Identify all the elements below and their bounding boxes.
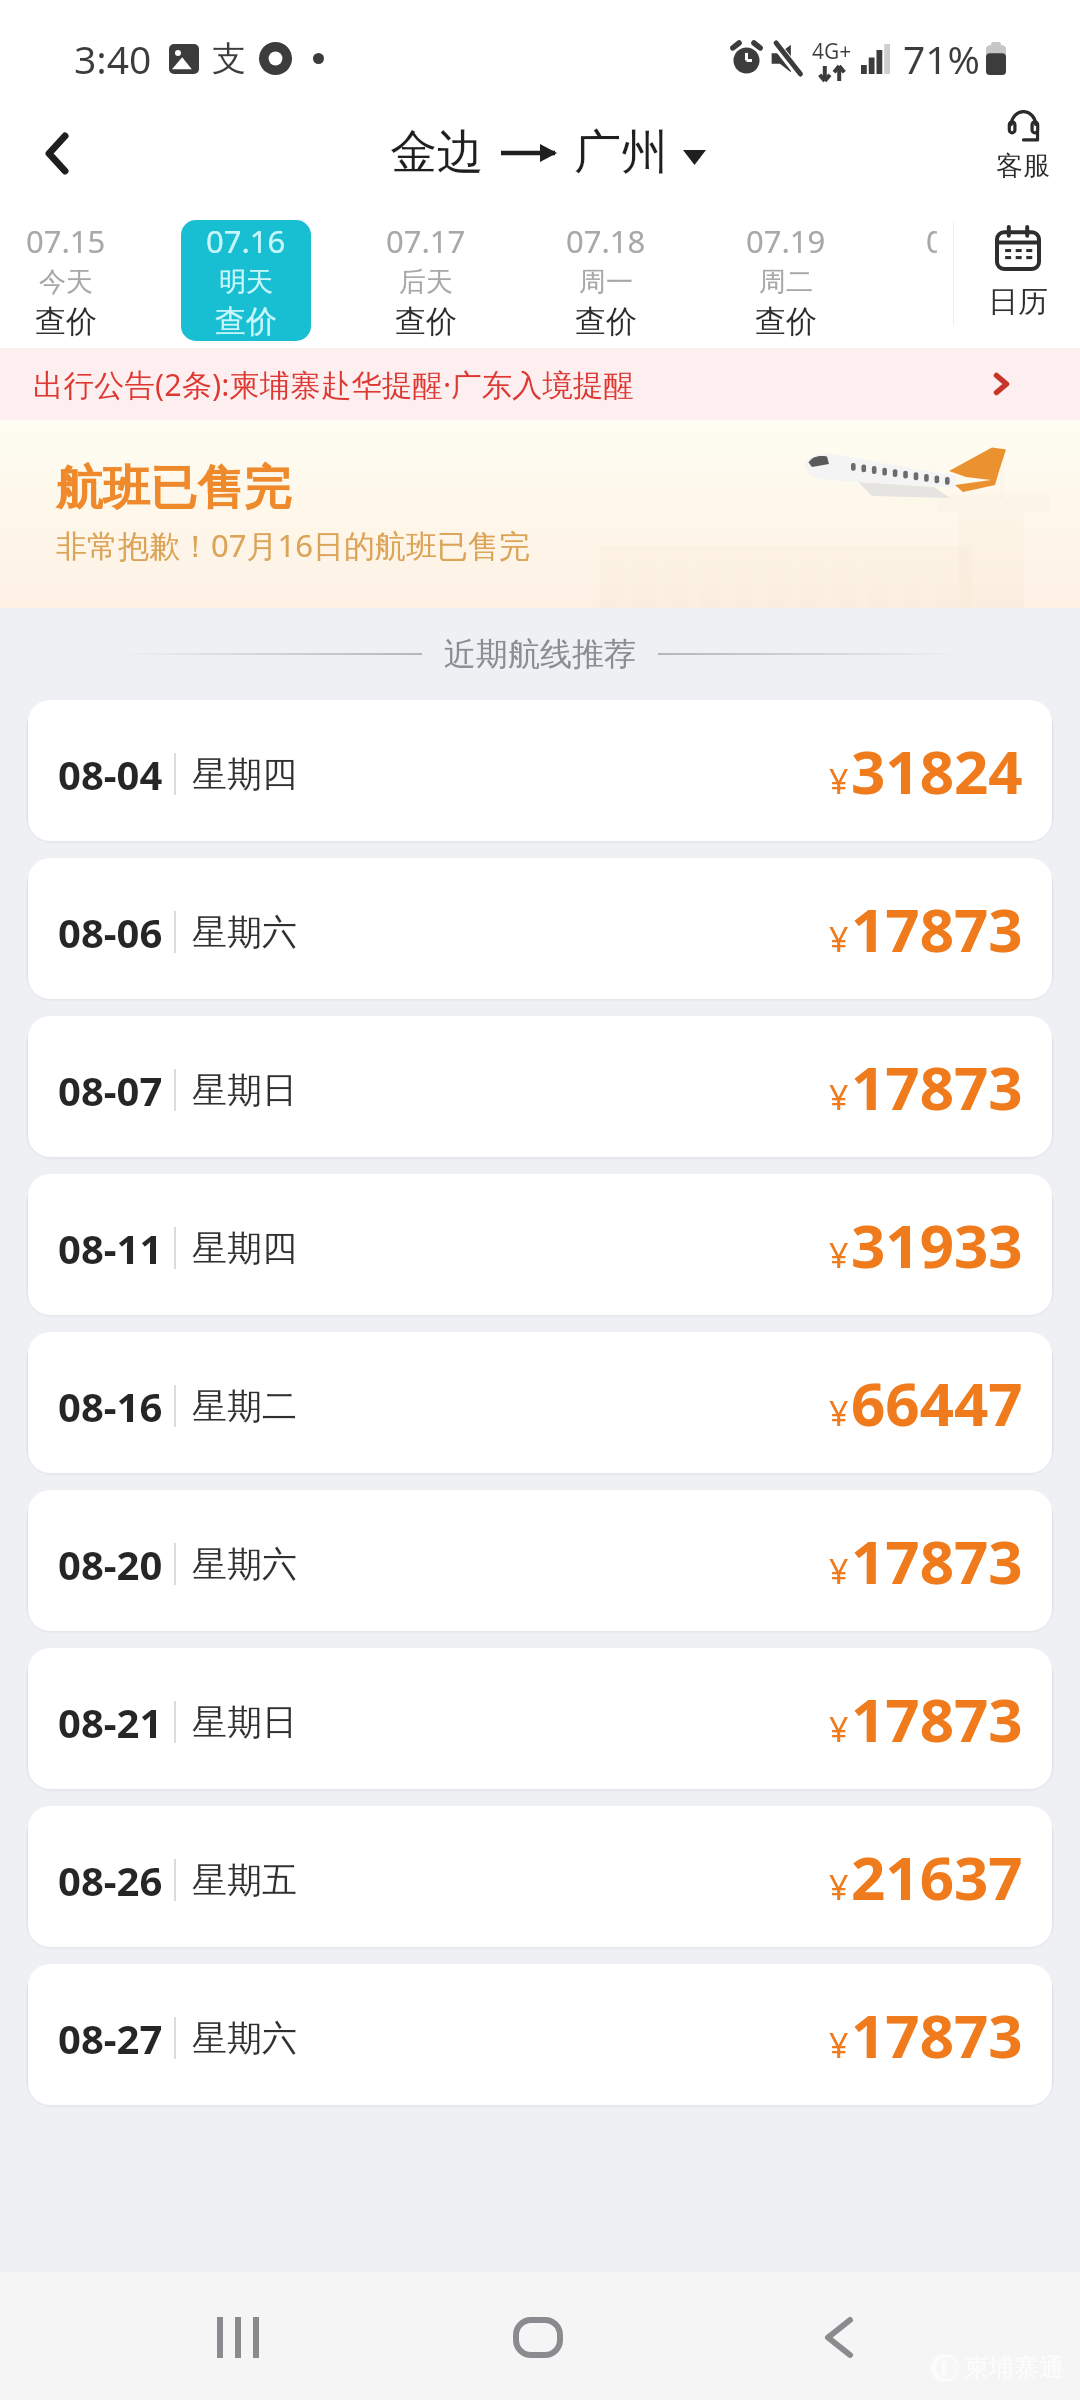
staticText: 支 xyxy=(212,37,246,80)
button[interactable]: 07.17 xyxy=(361,220,491,341)
staticText: 星期五 xyxy=(192,1858,297,1902)
staticText: 71% xyxy=(903,32,981,85)
staticText: 出行公告(2条):柬埔寨赴华提醒·广东入境提醒 xyxy=(33,363,635,405)
button[interactable]: 07.15 xyxy=(1,220,131,341)
staticText: ¥ xyxy=(829,1074,849,1120)
staticText: 航班已售完 xyxy=(56,459,291,518)
staticText: 07.18 xyxy=(566,220,646,262)
staticText: 07.16 xyxy=(206,220,286,262)
staticText: ¥ xyxy=(829,1864,849,1910)
staticText: 星期六 xyxy=(192,1542,297,1586)
staticText: 08-21 xyxy=(58,1695,163,1749)
button[interactable]: 08-07 xyxy=(28,1016,1052,1157)
button[interactable]: 08-20 xyxy=(28,1490,1052,1631)
staticText: 17873 xyxy=(851,1678,1023,1760)
staticText: 金边 xyxy=(390,123,484,182)
staticText: 08-20 xyxy=(58,1537,163,1591)
button[interactable]: Customer service xyxy=(978,110,1068,183)
staticText: 07.17 xyxy=(386,220,466,262)
staticText: 查价 xyxy=(395,302,457,341)
button[interactable]: Back xyxy=(13,109,101,197)
button[interactable]: Back xyxy=(784,2282,894,2392)
staticText: 08-16 xyxy=(58,1379,163,1433)
button[interactable]: 07.16 xyxy=(181,220,311,341)
staticText: 17873 xyxy=(851,888,1023,970)
staticText: 明天 xyxy=(219,265,273,299)
staticText: 星期六 xyxy=(192,2016,297,2060)
staticText: 08-06 xyxy=(58,905,163,959)
staticText: 日历 xyxy=(988,283,1048,321)
staticText: 3:40 xyxy=(74,32,152,85)
button[interactable]: 日历 xyxy=(955,200,1080,348)
staticText: 周一 xyxy=(579,265,633,299)
button[interactable]: 08-04 xyxy=(28,700,1052,841)
staticText: 广州 xyxy=(574,123,668,182)
staticText: 17873 xyxy=(851,1520,1023,1602)
button[interactable]: 08-16 xyxy=(28,1332,1052,1473)
staticText: 17873 xyxy=(851,1994,1023,2076)
staticText: 非常抱歉！07月16日的航班已售完 xyxy=(56,524,530,566)
staticText: 后天 xyxy=(399,265,453,299)
button[interactable]: 07.19 xyxy=(721,220,851,341)
staticText: 今天 xyxy=(39,265,93,299)
staticText: 07.19 xyxy=(746,220,826,262)
staticText: 31824 xyxy=(851,730,1023,812)
button[interactable]: 08-27 xyxy=(28,1964,1052,2105)
staticText: ¥ xyxy=(829,1548,849,1594)
button[interactable]: Recent apps xyxy=(183,2282,293,2392)
staticText: 08-26 xyxy=(58,1853,163,1907)
staticText: 17873 xyxy=(851,1046,1023,1128)
staticText: 星期日 xyxy=(192,1700,297,1744)
staticText: ¥ xyxy=(829,1390,849,1436)
staticText: 查价 xyxy=(755,302,817,341)
staticText: ¥ xyxy=(829,1232,849,1278)
staticText: 07.20 xyxy=(926,220,937,262)
staticText: 08-07 xyxy=(58,1063,163,1117)
staticText: ¥ xyxy=(829,916,849,962)
staticText: 星期二 xyxy=(192,1384,297,1428)
button[interactable]: 07.18 xyxy=(541,220,671,341)
staticText: 08-27 xyxy=(58,2011,163,2065)
button[interactable]: Home xyxy=(483,2282,593,2392)
button[interactable]: 08-26 xyxy=(28,1806,1052,1947)
staticText: 周二 xyxy=(759,265,813,299)
staticText: 星期六 xyxy=(192,910,297,954)
staticText: 客服 xyxy=(996,149,1050,183)
button[interactable]: 08-21 xyxy=(28,1648,1052,1789)
button[interactable]: 07.20 xyxy=(901,220,937,341)
button[interactable]: 出行公告(2条):柬埔寨赴华提醒·广东入境提醒 xyxy=(0,348,1080,420)
staticText: 21637 xyxy=(851,1836,1023,1918)
staticText: 31933 xyxy=(851,1204,1023,1286)
staticText: ¥ xyxy=(829,758,849,804)
staticText: 08-04 xyxy=(58,747,163,801)
button[interactable]: 08-11 xyxy=(28,1174,1052,1315)
staticText: 查价 xyxy=(35,302,97,341)
staticText: 星期四 xyxy=(192,1226,297,1270)
staticText: 近期航线推荐 xyxy=(444,634,636,674)
staticText: ¥ xyxy=(829,2022,849,2068)
staticText: 星期日 xyxy=(192,1068,297,1112)
staticText: 查价 xyxy=(575,302,637,341)
staticText: 66447 xyxy=(851,1362,1023,1444)
staticText: 星期四 xyxy=(192,752,297,796)
staticText: ¥ xyxy=(829,1706,849,1752)
staticText: 查价 xyxy=(215,302,277,341)
staticText: 08-11 xyxy=(58,1221,163,1275)
button[interactable]: 08-06 xyxy=(28,858,1052,999)
staticText: 07.15 xyxy=(26,220,106,262)
staticText: 4G+ xyxy=(812,37,852,66)
